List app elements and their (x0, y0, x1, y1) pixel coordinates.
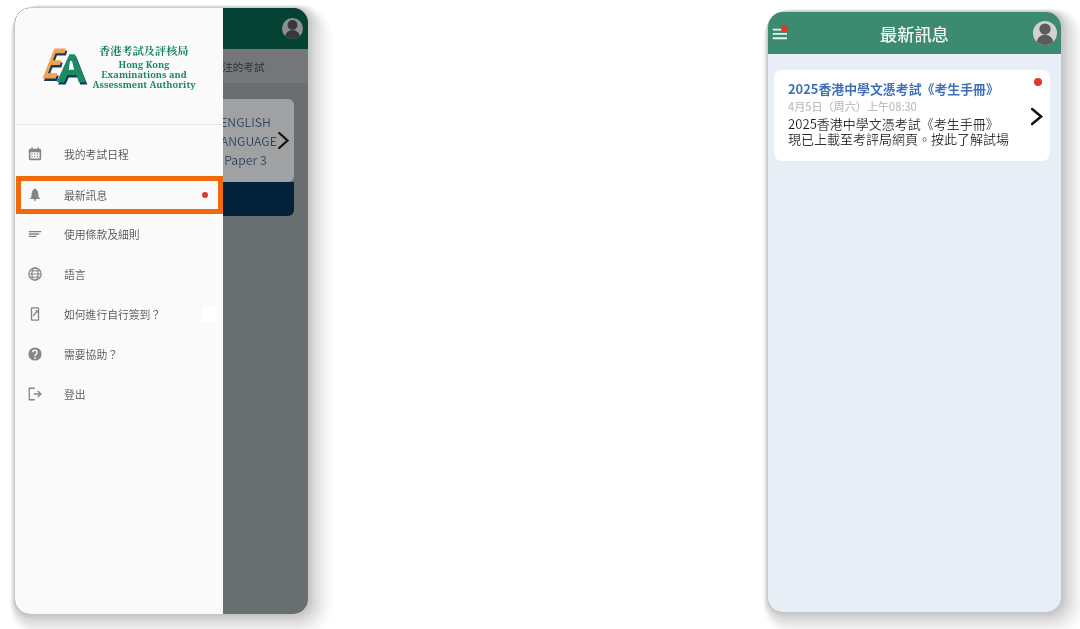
staticText: ENGLISH LANGUAGE Paper 3 (199, 113, 293, 169)
button[interactable]: 如何進行自行簽到？ (15, 294, 223, 334)
staticText: 香港考試及評核局 (99, 42, 189, 58)
button[interactable]: 登出 (15, 374, 223, 414)
staticText: 語言 (64, 266, 86, 282)
button[interactable]: 需要協助？ (15, 334, 223, 374)
staticText: 登出 (64, 386, 86, 402)
staticText: 2025香港中學文憑考試《考生手冊》 現已上載至考評局網頁。按此了解試場 (788, 114, 1010, 148)
button[interactable]: 語言 (15, 254, 223, 294)
staticText: 我的考試日程 (64, 146, 129, 162)
staticText: 最新訊息 (64, 187, 108, 203)
staticText: 4月5日（周六）上午08:30 (788, 98, 917, 114)
button[interactable]: Open navigation menu (772, 23, 792, 43)
staticText: 我關注的考試 (201, 59, 265, 74)
staticText: Hong Kong Examinations and Assessment Au… (92, 58, 196, 91)
button[interactable]: 最新訊息 (21, 181, 218, 209)
button[interactable]: 2025香港中學文憑考試《考生手冊》 (774, 70, 1050, 161)
button[interactable]: 我的考試日程 (15, 134, 223, 174)
button[interactable]: Account (1033, 21, 1057, 45)
staticText: 2025香港中學文憑考試《考生手冊》 (788, 79, 999, 98)
button[interactable]: ENGLISH LANGUAGE Paper 3 (199, 99, 294, 182)
staticText: 如何進行自行簽到？ (64, 306, 162, 322)
staticText: 最新訊息 (880, 21, 949, 46)
button[interactable]: Account (282, 18, 303, 39)
staticText: 需要協助？ (64, 346, 118, 362)
staticText: 使用條款及細則 (64, 226, 140, 242)
button[interactable]: 使用條款及細則 (15, 214, 223, 254)
